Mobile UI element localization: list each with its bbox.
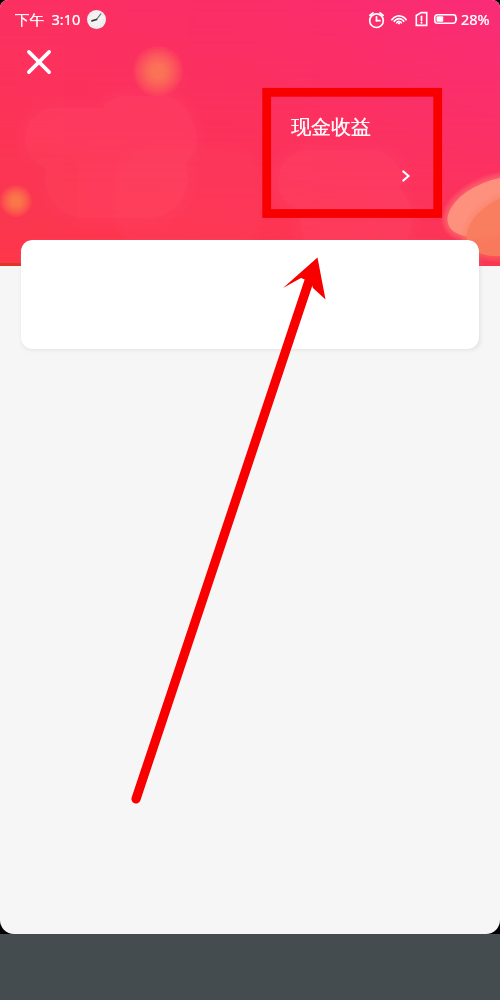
button[interactable] (21, 240, 479, 349)
staticText: 现金收益 (291, 115, 371, 140)
staticText: 下午 3:10 (15, 9, 81, 29)
button[interactable]: Close (16, 39, 61, 84)
button[interactable]: 现金收益 (276, 100, 426, 205)
staticText: 28% (461, 9, 490, 29)
